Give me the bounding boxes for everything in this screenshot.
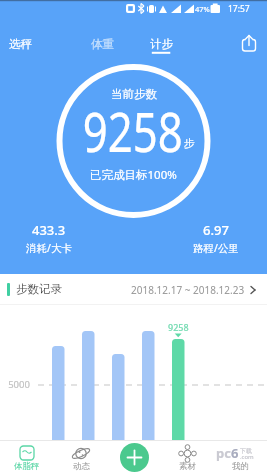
staticText: 5000 [4,378,34,391]
staticText: 素材 [179,461,196,472]
button[interactable]: 计步 [143,30,180,58]
staticText: .com [240,453,254,461]
staticText: 选秤 [9,37,32,51]
staticText: 6.97 [203,221,229,239]
staticText: 步 [184,136,195,150]
staticText: 当前步数 [111,87,157,101]
button[interactable]: 步数记录 [0,274,267,305]
staticText: 我的 [232,461,249,472]
button[interactable] [238,32,260,54]
staticText: 体脂秤 [14,461,40,472]
staticText: 消耗/大卡 [26,241,72,255]
button[interactable]: pc [214,440,267,475]
staticText: 47% [195,4,210,14]
staticText: 体重 [91,37,114,51]
button[interactable]: 选秤 [2,30,39,58]
staticText: pc [216,444,231,462]
button[interactable]: 动态 [54,440,108,475]
staticText: 9258 [83,94,183,168]
staticText: 已完成目标100% [90,167,177,183]
staticText: 动态 [73,461,90,472]
staticText: 6 [231,444,239,462]
staticText: 9258 [168,321,189,333]
button[interactable] [120,443,149,472]
button[interactable]: 体重 [84,30,121,58]
staticText: 下载 [240,447,252,455]
staticText: 433.3 [32,221,66,239]
staticText: 步数记录 [16,282,62,296]
staticText: 17:57 [228,3,250,15]
staticText: 计步 [150,37,173,51]
button[interactable]: 素材 [161,440,214,475]
staticText: 2018.12.17 ~ 2018.12.23 [131,283,245,297]
button[interactable]: 体脂秤 [0,440,54,475]
staticText: 路程/公里 [193,241,239,255]
